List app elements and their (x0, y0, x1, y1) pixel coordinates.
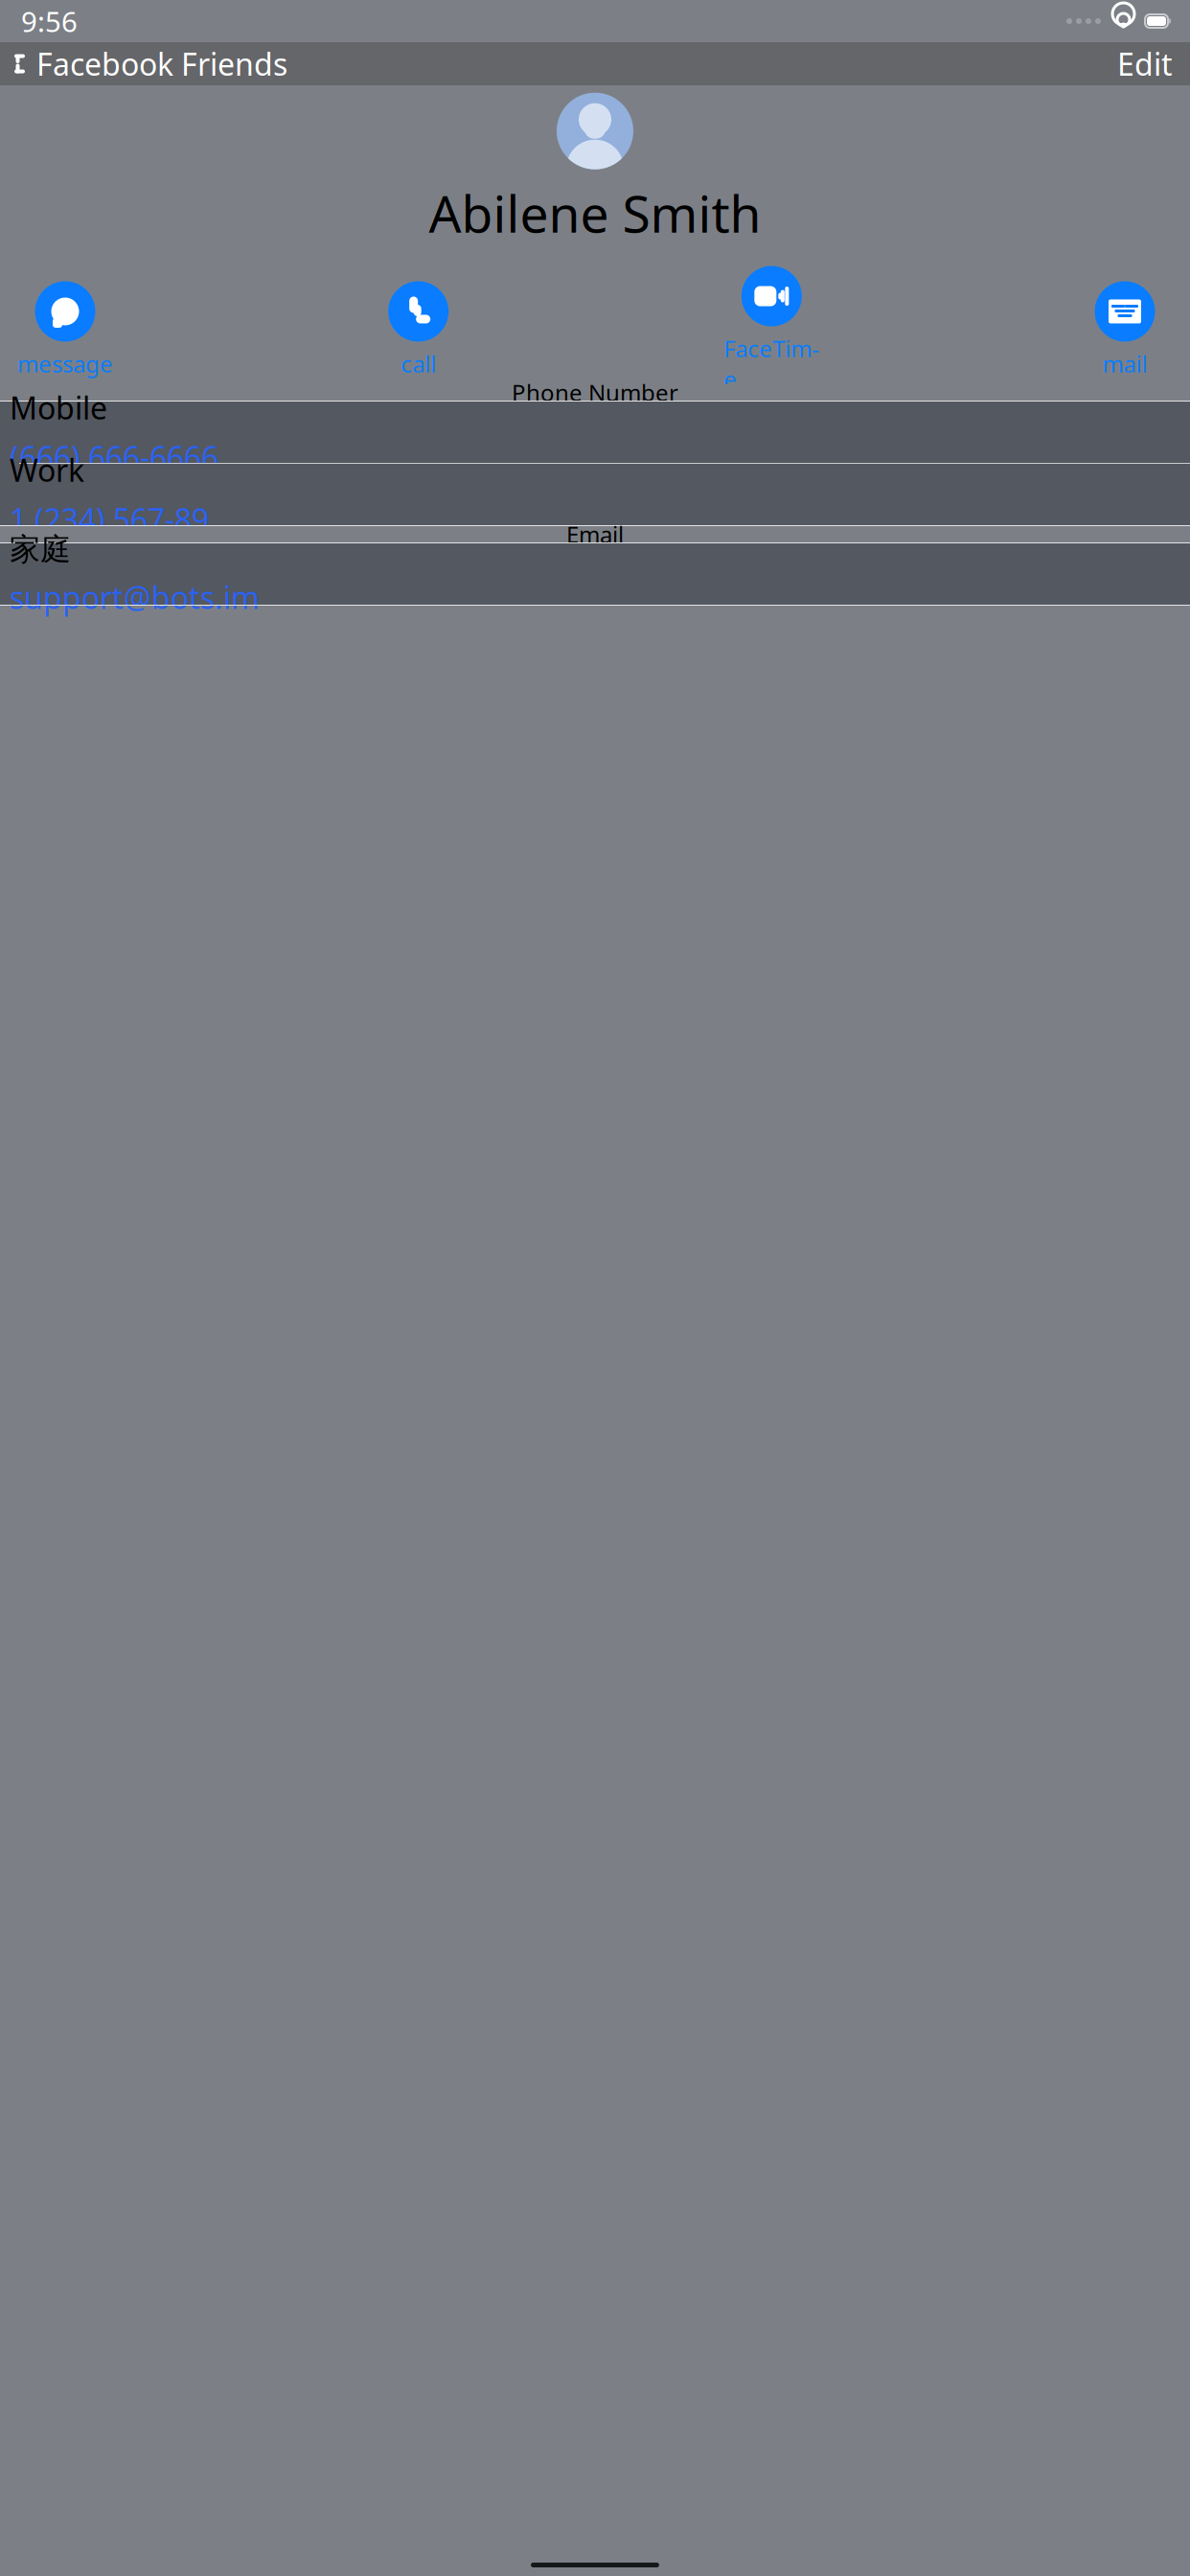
button[interactable]: message (17, 281, 113, 379)
staticText: FaceTime (724, 333, 819, 394)
staticText: Phone Number (512, 377, 678, 408)
staticText: message (17, 348, 113, 379)
button[interactable]: FaceTime (724, 266, 819, 394)
staticText: mail (1102, 348, 1147, 379)
staticText: 家庭 (10, 531, 71, 568)
button[interactable]: 家庭 (0, 543, 1190, 605)
button[interactable]: Work (0, 464, 1190, 525)
staticText: Mobile (10, 387, 107, 428)
staticText: Work (10, 449, 84, 490)
staticText: Facebook Friends (36, 43, 287, 84)
staticText: 1 (234) 567-89 (10, 499, 209, 540)
staticText: call (401, 348, 436, 379)
button[interactable]: Edit (1100, 37, 1190, 91)
staticText: (666) 666-6666 (10, 437, 218, 477)
staticText: Edit (1117, 43, 1173, 84)
button[interactable]: Mobile (0, 402, 1190, 463)
button[interactable]: mail (1077, 281, 1173, 379)
button[interactable]: Facebook Friends (0, 37, 287, 91)
staticText: support@bots.im (10, 577, 260, 618)
staticText: Abilene Smith (429, 179, 761, 247)
staticText: 9:56 (21, 2, 78, 40)
staticText: Email (566, 519, 624, 550)
button[interactable]: call (371, 281, 466, 379)
